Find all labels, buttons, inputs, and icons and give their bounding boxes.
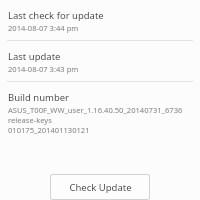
staticText: Last update bbox=[8, 50, 61, 63]
staticText: Check Update bbox=[69, 181, 132, 194]
staticText: 2014-08-07 3:43 pm bbox=[8, 64, 79, 74]
button[interactable]: Last check for update bbox=[0, 5, 200, 36]
staticText: ASUS_T00F_WW_user_1.16.40.50_20140731_67… bbox=[8, 105, 183, 115]
staticText: 2014-08-07 3:44 pm bbox=[8, 23, 79, 33]
button[interactable]: Last update bbox=[0, 46, 200, 77]
staticText: release-keys bbox=[8, 115, 52, 125]
staticText: Build number bbox=[8, 91, 70, 104]
button[interactable]: Check Update bbox=[50, 174, 150, 200]
staticText: Last check for update bbox=[8, 9, 104, 22]
button[interactable]: Build number bbox=[0, 87, 200, 138]
staticText: 010175_201401130121 bbox=[8, 125, 90, 135]
